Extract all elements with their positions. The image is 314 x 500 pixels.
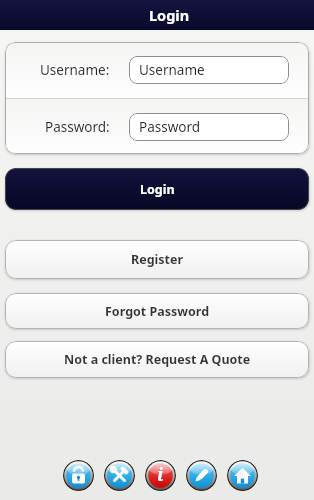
staticText: Register: [131, 251, 184, 268]
button[interactable]: Forgot Password: [5, 293, 309, 329]
staticText: Login: [149, 5, 190, 25]
staticText: Forgot Password: [105, 303, 210, 320]
button[interactable]: Password: [129, 113, 289, 141]
staticText: Password:: [45, 118, 110, 136]
button[interactable]: Login: [5, 168, 309, 210]
button[interactable]: [227, 460, 258, 491]
staticText: Username: [139, 61, 205, 79]
button[interactable]: i: [145, 460, 176, 491]
button[interactable]: [63, 460, 94, 491]
button[interactable]: [104, 460, 135, 491]
button[interactable]: Not a client? Request A Quote: [5, 341, 309, 378]
button[interactable]: Register: [5, 240, 309, 279]
button[interactable]: Username: [129, 56, 289, 84]
staticText: Password: [139, 118, 201, 136]
staticText: Login: [140, 181, 175, 198]
staticText: Not a client? Request A Quote: [64, 351, 251, 368]
button[interactable]: [186, 460, 217, 491]
staticText: i: [157, 462, 164, 487]
staticText: Username:: [40, 61, 110, 79]
